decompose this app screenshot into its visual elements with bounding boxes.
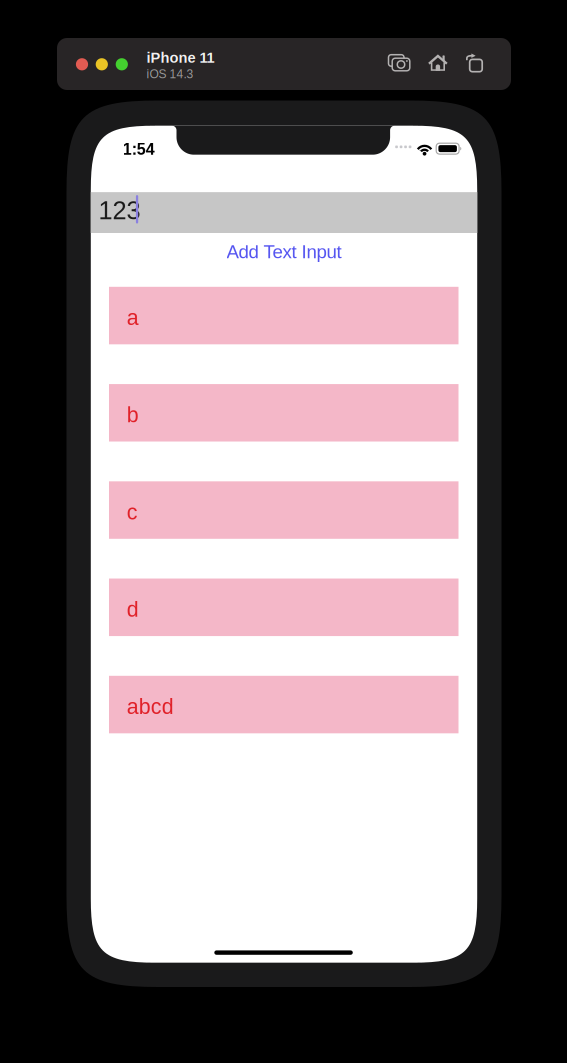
staticText: abcd <box>127 695 174 718</box>
button[interactable]: d <box>109 578 458 636</box>
staticText: a <box>127 306 139 329</box>
button[interactable]: c <box>109 481 458 539</box>
button[interactable]: Zoom <box>116 58 128 70</box>
button[interactable]: Close <box>76 58 88 70</box>
button[interactable]: Minimise <box>96 58 108 70</box>
staticText: Add Text Input <box>226 241 341 262</box>
staticText: d <box>127 597 139 621</box>
button[interactable]: b <box>109 384 458 442</box>
staticText: c <box>127 500 138 524</box>
button[interactable]: a <box>109 287 458 344</box>
staticText: 1:54 <box>123 140 155 158</box>
staticText: iOS 14.3 <box>146 67 193 81</box>
button[interactable]: abcd <box>109 676 458 733</box>
button[interactable]: Home <box>428 54 448 71</box>
button[interactable]: Screenshot <box>388 55 410 71</box>
button[interactable]: Rotate <box>466 53 482 72</box>
staticText: 123 <box>99 196 141 224</box>
staticText: iPhone 11 <box>146 49 214 66</box>
staticText: b <box>127 403 139 427</box>
button[interactable]: Add Text Input <box>91 236 477 268</box>
